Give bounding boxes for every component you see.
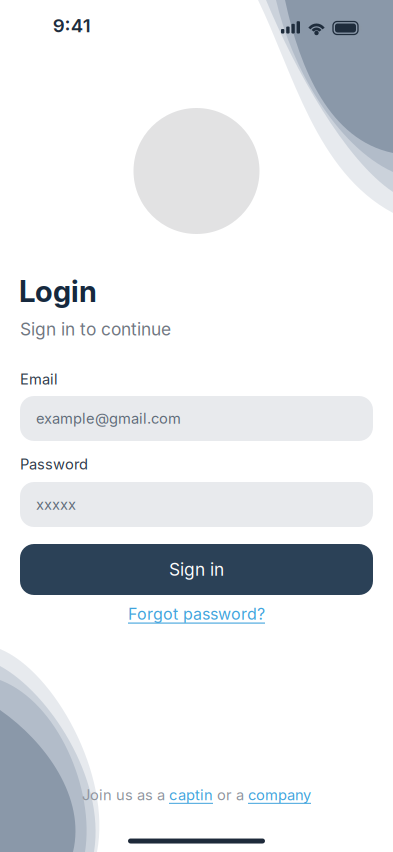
staticText: or a xyxy=(213,786,248,804)
staticText: Sign in xyxy=(169,559,224,580)
staticText: Password xyxy=(20,455,88,473)
staticText: xxxxx xyxy=(36,496,76,513)
staticText: company xyxy=(248,786,311,804)
staticText: example@gmail.com xyxy=(36,410,181,427)
button[interactable]: Forgot password? xyxy=(128,605,265,623)
staticText: captin xyxy=(169,786,213,804)
button[interactable]: example@gmail.com xyxy=(20,396,373,441)
staticText: 9:41 xyxy=(53,14,91,36)
staticText: Sign in to continue xyxy=(20,319,171,339)
staticText: Forgot password? xyxy=(128,605,265,623)
button[interactable]: Sign in xyxy=(20,544,373,595)
staticText: Email xyxy=(20,370,58,388)
staticText: Login xyxy=(19,274,97,309)
button[interactable]: captin xyxy=(169,786,213,804)
button[interactable]: xxxxx xyxy=(20,482,373,527)
button[interactable]: company xyxy=(248,786,311,804)
staticText: Join us as a xyxy=(82,786,169,804)
